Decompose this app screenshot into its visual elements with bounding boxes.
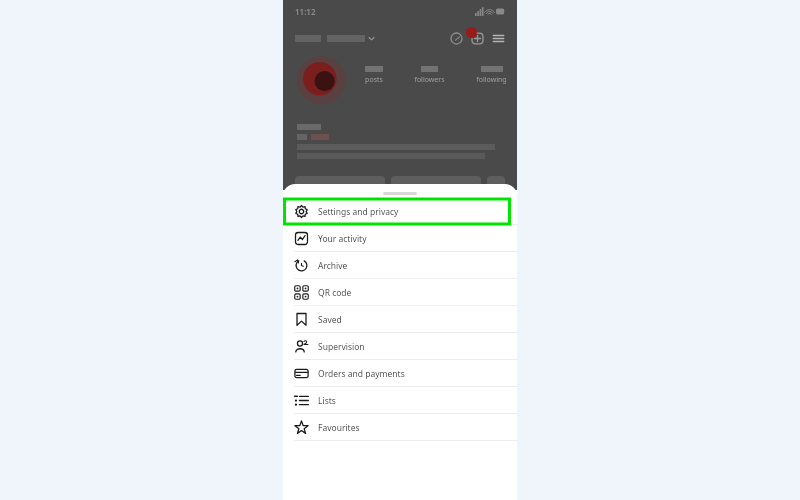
staticText: Orders and payments	[318, 368, 405, 380]
button[interactable]: Archive	[283, 252, 517, 279]
staticText: Supervision	[318, 341, 365, 353]
staticText: 11:12	[295, 6, 316, 17]
staticText: QR code	[318, 287, 352, 299]
button[interactable]: Orders and payments	[283, 360, 517, 387]
button[interactable]: Supervision	[283, 333, 517, 360]
other: Threads	[450, 32, 463, 45]
staticText: Settings and privacy	[318, 206, 399, 218]
other: New post	[471, 32, 484, 45]
staticText: Archive	[318, 260, 348, 272]
staticText: Your activity	[318, 233, 367, 245]
button[interactable]: QR code	[283, 279, 517, 306]
button[interactable]: Saved	[283, 306, 517, 333]
staticText: Favourites	[318, 422, 360, 434]
button[interactable]: Your activity	[283, 225, 517, 252]
button[interactable]: Lists	[283, 387, 517, 414]
button[interactable]: Settings and privacy	[283, 198, 517, 225]
staticText: followers	[414, 75, 445, 85]
staticText: posts	[365, 75, 383, 85]
other: Menu	[492, 32, 505, 45]
staticText: following	[476, 75, 507, 85]
staticText: Lists	[318, 395, 336, 407]
staticText: Saved	[318, 314, 342, 326]
button[interactable]: Favourites	[283, 414, 517, 441]
